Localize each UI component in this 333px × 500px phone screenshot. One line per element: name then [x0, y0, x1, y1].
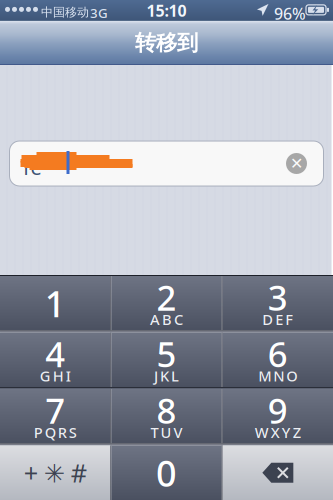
- button[interactable]: 4: [0, 332, 110, 387]
- staticText: WXYZ: [255, 422, 301, 442]
- staticText: ABC: [150, 309, 183, 329]
- button[interactable]: Clear text: [269, 141, 323, 186]
- staticText: 3G: [90, 4, 108, 22]
- staticText: 15:10: [146, 0, 186, 21]
- staticText: 5: [156, 331, 176, 377]
- staticText: +✳#: [24, 456, 87, 489]
- staticText: DEF: [262, 309, 293, 329]
- staticText: 6: [268, 331, 288, 377]
- staticText: 8: [156, 387, 176, 433]
- staticText: 3: [268, 274, 288, 320]
- staticText: Te: [20, 154, 41, 181]
- staticText: PQRS: [34, 422, 77, 442]
- staticText: 4: [45, 331, 65, 377]
- button[interactable]: 6: [223, 332, 333, 387]
- staticText: 2: [156, 274, 176, 320]
- staticText: 中国移动: [41, 5, 89, 20]
- button[interactable]: 5: [111, 332, 222, 387]
- staticText: GHI: [40, 366, 71, 385]
- button[interactable]: 9: [223, 389, 333, 443]
- staticText: 1: [45, 279, 66, 327]
- staticText: 9: [268, 387, 288, 433]
- staticText: TUV: [150, 422, 182, 442]
- staticText: 96%: [274, 3, 306, 24]
- button[interactable]: 3: [223, 276, 333, 330]
- staticText: MNO: [258, 366, 297, 385]
- button[interactable]: 7: [0, 389, 110, 443]
- staticText: 0: [156, 449, 177, 497]
- button[interactable]: 8: [111, 389, 222, 443]
- staticText: JKL: [154, 366, 179, 385]
- button[interactable]: 1: [0, 276, 110, 330]
- staticText: 转移到: [135, 30, 198, 56]
- button[interactable]: 0: [111, 445, 222, 500]
- staticText: ✕: [290, 154, 303, 173]
- button[interactable]: +✳#: [0, 445, 110, 500]
- button[interactable]: [223, 445, 333, 500]
- staticText: 7: [45, 387, 65, 433]
- button[interactable]: 2: [111, 276, 222, 330]
